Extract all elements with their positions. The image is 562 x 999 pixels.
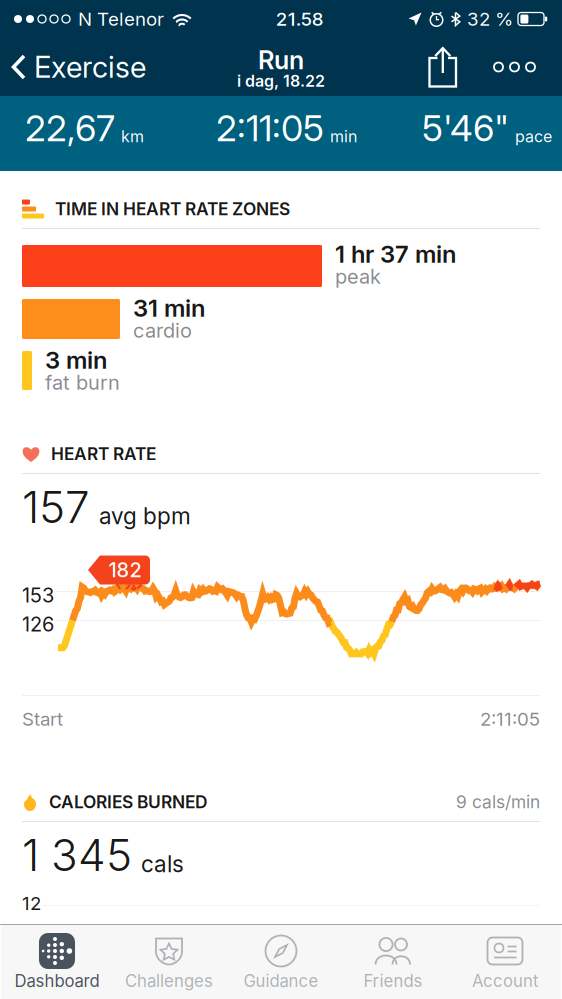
staticText: fat burn: [45, 370, 120, 395]
staticText: 9 cals/min: [456, 791, 540, 812]
staticText: 2:11:05: [480, 708, 540, 730]
staticText: TIME IN HEART RATE ZONES: [55, 198, 290, 219]
staticText: CALORIES BURNED: [49, 791, 208, 812]
staticText: Guidance: [243, 971, 318, 991]
staticText: km: [121, 127, 144, 146]
staticText: cals: [141, 850, 184, 878]
staticText: Run: [258, 45, 304, 75]
button[interactable]: Account: [449, 925, 561, 999]
staticText: Exercise: [34, 49, 146, 85]
staticText: cardio: [133, 318, 192, 343]
button[interactable]: Challenges: [113, 925, 225, 999]
staticText: 31 min: [133, 293, 205, 322]
staticText: 21.58: [276, 8, 324, 30]
staticText: min: [330, 127, 357, 146]
staticText: Account: [472, 971, 538, 991]
staticText: 157: [22, 480, 90, 534]
staticText: Start: [22, 708, 63, 730]
staticText: pace: [515, 127, 552, 146]
staticText: HEART RATE: [51, 443, 156, 464]
staticText: 126: [22, 612, 54, 636]
button[interactable]: Friends: [337, 925, 449, 999]
staticText: peak: [335, 264, 381, 289]
staticText: 5'46": [422, 106, 509, 150]
button[interactable]: Guidance: [225, 925, 337, 999]
staticText: 12: [22, 892, 41, 915]
staticText: 153: [22, 583, 54, 607]
staticText: Challenges: [125, 971, 213, 991]
staticText: 182: [108, 558, 141, 582]
staticText: 1 345: [22, 828, 132, 882]
staticText: N Telenor: [78, 8, 164, 30]
staticText: 32 %: [467, 8, 513, 30]
button[interactable]: Dashboard: [1, 925, 113, 999]
staticText: 1 hr 37 min: [335, 239, 456, 268]
staticText: Friends: [363, 971, 422, 991]
staticText: 22,67: [25, 106, 115, 150]
button[interactable]: Share: [407, 38, 474, 96]
button[interactable]: Exercise: [0, 38, 156, 96]
staticText: 3 min: [45, 345, 107, 374]
staticText: i dag, 18.22: [237, 71, 325, 91]
staticText: 2:11:05: [216, 106, 324, 150]
button[interactable]: More options: [474, 38, 562, 96]
staticText: avg bpm: [99, 502, 191, 530]
staticText: Dashboard: [14, 971, 99, 991]
